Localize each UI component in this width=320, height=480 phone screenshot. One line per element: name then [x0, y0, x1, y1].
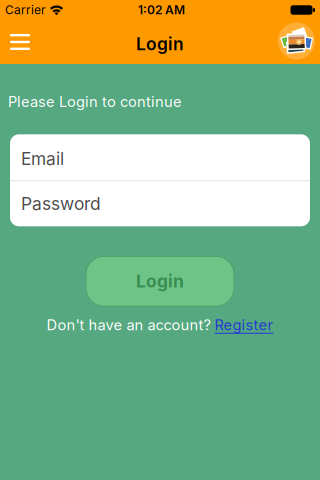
staticText: Register [214, 316, 273, 334]
staticText: Password [21, 194, 101, 214]
button[interactable]: Password [10, 181, 310, 226]
staticText: Login [136, 271, 184, 291]
button[interactable]: Register [214, 316, 273, 334]
staticText: Please Login to continue [8, 93, 182, 110]
staticText: Email [21, 149, 64, 169]
button[interactable]: Menu [0, 20, 44, 64]
staticText: 1:02 AM [138, 3, 185, 17]
staticText: Login [136, 34, 184, 54]
button[interactable]: Photos [274, 20, 318, 64]
button[interactable]: Login [86, 256, 234, 306]
button[interactable]: Email [10, 134, 310, 180]
staticText: Don't have an account? [46, 316, 214, 334]
staticText: Carrier [5, 3, 46, 17]
